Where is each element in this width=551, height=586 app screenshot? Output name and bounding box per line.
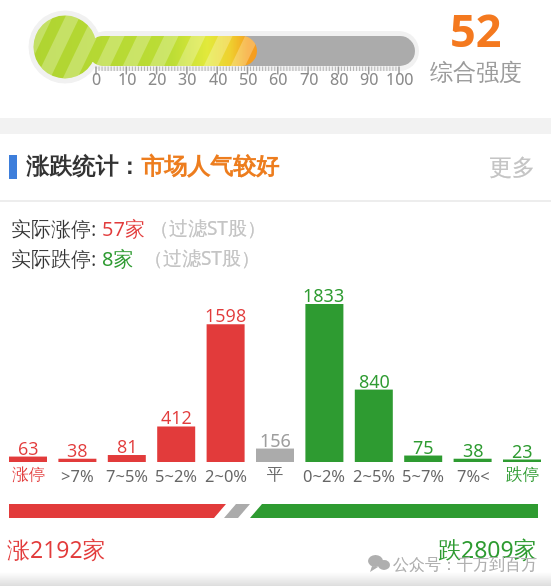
staticText: 综合强度 <box>430 58 522 87</box>
staticText: 38 <box>67 438 88 463</box>
staticText: 7%< <box>457 464 490 486</box>
staticText: 1833 <box>303 283 345 308</box>
staticText: 63 <box>18 436 39 461</box>
staticText: 跌停 <box>506 464 539 485</box>
staticText: 40 <box>209 68 228 90</box>
staticText: 市场人气较好 <box>141 152 279 181</box>
staticText: 156 <box>260 428 291 453</box>
staticText: 840 <box>359 369 390 394</box>
staticText: 75 <box>413 435 434 460</box>
staticText: 涨停 <box>12 464 45 485</box>
staticText: 70 <box>300 68 319 90</box>
staticText: 涨跌统计： <box>26 152 141 181</box>
staticText: 10 <box>118 68 137 90</box>
staticText: 公众号：千万到百万 <box>393 555 537 575</box>
staticText: 7~5% <box>106 464 149 486</box>
staticText: 81 <box>117 434 138 459</box>
staticText: 0 <box>92 68 102 90</box>
staticText: 跌2809家 <box>438 533 537 564</box>
staticText: 平 <box>267 464 284 485</box>
staticText: 57家 <box>102 215 145 242</box>
staticText: 30 <box>178 68 197 90</box>
staticText: 涨2192家 <box>7 533 106 564</box>
staticText: 80 <box>330 68 349 90</box>
button[interactable]: 更多 <box>489 153 535 182</box>
staticText: 52 <box>450 0 502 60</box>
staticText: 2~5% <box>353 464 396 486</box>
staticText: 实际跌停: <box>11 245 102 272</box>
staticText: 5~2% <box>155 464 198 486</box>
staticText: 60 <box>269 68 288 90</box>
staticText: 2~0% <box>205 464 248 486</box>
staticText: 8家 <box>102 245 134 272</box>
staticText: 更多 <box>489 153 535 182</box>
staticText: 38 <box>463 438 484 463</box>
staticText: 1598 <box>205 303 247 328</box>
staticText: （过滤ST股） <box>145 215 266 241</box>
button[interactable]: 涨跌统计： <box>26 152 279 181</box>
staticText: 实际涨停: <box>11 215 102 242</box>
staticText: 23 <box>512 439 533 464</box>
staticText: 0~2% <box>303 464 346 486</box>
staticText: 5~7% <box>402 464 445 486</box>
staticText: 412 <box>161 405 192 430</box>
staticText: 50 <box>239 68 258 90</box>
staticText: >7% <box>61 464 94 486</box>
staticText: （过滤ST股） <box>134 245 260 271</box>
staticText: 90 <box>360 68 379 90</box>
staticText: 100 <box>386 68 414 90</box>
staticText: 20 <box>148 68 167 90</box>
